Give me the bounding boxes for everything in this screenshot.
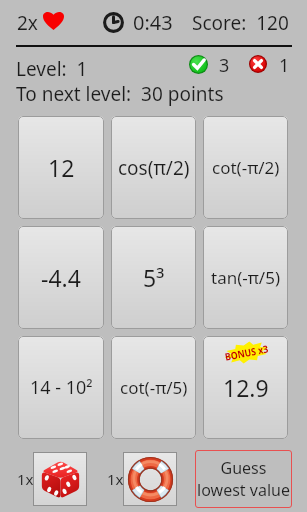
staticText: To next level: 30 points bbox=[16, 81, 224, 107]
staticText: 1x bbox=[17, 469, 34, 489]
staticText: 12.9 bbox=[223, 372, 269, 403]
staticText: BONUS x3 bbox=[224, 341, 269, 363]
staticText: 5³ bbox=[143, 262, 165, 293]
staticText: cot(-π/5) bbox=[120, 376, 188, 399]
button[interactable]: 12.9 bbox=[203, 336, 288, 439]
staticText: 3 bbox=[219, 53, 230, 75]
button[interactable]: Guess lowest value bbox=[195, 450, 292, 508]
button[interactable]: -4.4 bbox=[18, 226, 104, 329]
button[interactable]: Use dice bbox=[33, 452, 87, 506]
button[interactable]: cot(-π/2) bbox=[203, 116, 288, 219]
staticText: 1 bbox=[279, 53, 290, 75]
staticText: 0:43 bbox=[133, 9, 173, 36]
staticText: Level: 1 bbox=[16, 56, 88, 78]
staticText: 2x bbox=[17, 10, 38, 36]
button[interactable]: Use lifebuoy bbox=[123, 452, 177, 506]
staticText: 1x bbox=[107, 469, 124, 489]
button[interactable]: cos(π/2) bbox=[111, 116, 196, 219]
staticText: cot(-π/2) bbox=[212, 156, 280, 179]
button[interactable]: cot(-π/5) bbox=[111, 336, 196, 439]
staticText: 12 bbox=[48, 152, 75, 183]
staticText: cos(π/2) bbox=[118, 155, 190, 181]
staticText: -4.4 bbox=[41, 262, 81, 293]
button[interactable]: 5³ bbox=[111, 226, 196, 329]
staticText: Score: 120 bbox=[192, 10, 289, 36]
staticText: Guess lowest value bbox=[197, 457, 290, 501]
button[interactable]: tan(-π/5) bbox=[203, 226, 288, 329]
staticText: 14 - 10² bbox=[30, 375, 93, 400]
button[interactable]: 14 - 10² bbox=[18, 336, 104, 439]
staticText: tan(-π/5) bbox=[211, 266, 281, 289]
button[interactable]: 12 bbox=[18, 116, 104, 219]
